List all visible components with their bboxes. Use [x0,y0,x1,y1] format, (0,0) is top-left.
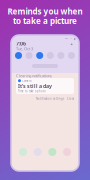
button[interactable]: Bluetooth [36,52,43,59]
staticText: Notification settings Clear [36,97,74,100]
staticText: Camera [22,79,31,82]
button[interactable]: Do not disturb [47,52,54,59]
button[interactable]: Mobile data [26,52,33,59]
button[interactable]: Wi-Fi [15,52,22,59]
staticText: ••• ⌃ ▮ [65,37,75,40]
staticText: Reminds you when [7,6,82,17]
button[interactable]: Photos [63,148,71,156]
button[interactable]: Phone [19,148,27,156]
staticText: Time to take a photo [18,89,46,93]
staticText: Tue, Oct 3 [16,46,33,51]
staticText: to take a picture [13,16,77,26]
button[interactable]: Camera [48,148,56,156]
button[interactable]: Flashlight [57,52,64,59]
staticText: 7:06 [16,40,26,47]
staticText: It's still a day [18,82,52,90]
button[interactable]: Rotation lock [68,52,75,59]
staticText: ✦ [70,42,73,46]
button[interactable]: Messages [34,148,42,156]
staticText: Clearing notifications [16,73,52,78]
button[interactable]: Camera [16,78,74,94]
